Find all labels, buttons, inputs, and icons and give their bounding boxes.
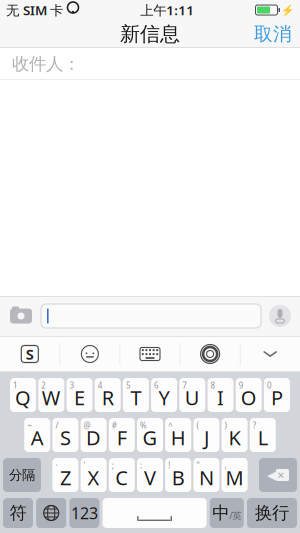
button[interactable]: Hide keyboard [240, 336, 300, 372]
button[interactable]: Settings [180, 336, 240, 372]
staticText: 分隔 [9, 467, 35, 483]
staticText: 符 [9, 502, 26, 524]
button[interactable]: Sogou [0, 336, 60, 372]
staticText: K [229, 424, 241, 451]
button[interactable]: Delete [259, 458, 297, 492]
staticText: ? [253, 420, 256, 431]
button[interactable]: @ [81, 418, 107, 452]
button[interactable]: ) [222, 418, 248, 452]
staticText: 3 [69, 380, 74, 391]
button[interactable]: 6 [151, 378, 177, 412]
staticText: D [86, 424, 101, 451]
staticText: U [185, 384, 200, 411]
staticText: 换行 [255, 502, 289, 524]
staticText: 中 [212, 502, 229, 524]
button[interactable]: : [137, 458, 163, 492]
staticText: 5 [126, 380, 131, 391]
staticText: ! [168, 460, 170, 471]
button[interactable]: ~ [24, 418, 50, 452]
staticText: W [42, 384, 61, 411]
staticText: ⚡ [281, 4, 294, 16]
button[interactable]: ^ [165, 418, 191, 452]
button[interactable]: 3 [66, 378, 92, 412]
staticText: J [204, 424, 209, 451]
staticText: C [115, 464, 128, 491]
button[interactable]: ? [250, 418, 276, 452]
staticText: 8 [210, 380, 215, 391]
button[interactable]: ! [165, 458, 191, 492]
button[interactable]: 4 [95, 378, 121, 412]
staticText: × [277, 467, 284, 483]
staticText: 7 [182, 380, 187, 391]
button[interactable]: Space [103, 498, 207, 528]
button[interactable]: 123 [69, 498, 99, 528]
staticText: 上午1:11 [140, 1, 194, 19]
button[interactable]: 5 [123, 378, 149, 412]
staticText: 收件人： [12, 53, 80, 75]
staticText: M [226, 464, 244, 491]
staticText: 无 SIM 卡 [6, 1, 63, 19]
button[interactable]: 符 [3, 498, 33, 528]
staticText: O [241, 384, 257, 411]
staticText: ◀ [267, 468, 276, 482]
staticText: 新信息 [120, 22, 180, 46]
button[interactable]: 0 [264, 378, 290, 412]
button[interactable]: / [52, 418, 78, 452]
staticText: I [217, 384, 224, 411]
button[interactable]: Switch keyboard [36, 498, 66, 528]
button[interactable]: % [137, 418, 163, 452]
button[interactable]: ; [109, 458, 135, 492]
staticText: 2 [41, 380, 46, 391]
staticText: S [26, 344, 34, 364]
staticText: / [55, 420, 58, 431]
staticText: : [140, 460, 142, 471]
staticText: F [117, 424, 127, 451]
button[interactable]: 取消 [246, 16, 300, 51]
staticText: X [88, 464, 100, 491]
staticText: Y [159, 384, 170, 411]
staticText: 1 [13, 380, 18, 391]
staticText: E [74, 384, 85, 411]
staticText: V [144, 464, 156, 491]
button[interactable]: Emoji [60, 336, 120, 372]
button[interactable]: · [52, 458, 78, 492]
staticText: ( [196, 420, 198, 431]
staticText: H [171, 424, 186, 451]
button[interactable]: ( [193, 418, 219, 452]
staticText: · [55, 460, 57, 471]
staticText: @ [84, 420, 91, 431]
staticText: L [258, 424, 268, 451]
staticText: P [271, 384, 283, 411]
button[interactable]: 分隔 [3, 458, 41, 492]
staticText: 123 [71, 502, 98, 524]
staticText: ; [112, 460, 114, 471]
staticText: S [60, 424, 71, 451]
staticText: ) [225, 420, 227, 431]
button[interactable]: Keyboard layout [120, 336, 180, 372]
button[interactable]: 中 [210, 498, 244, 528]
staticText: # [112, 420, 117, 431]
staticText: , [225, 460, 227, 471]
staticText: Q [15, 384, 31, 411]
button[interactable]: ' [81, 458, 107, 492]
staticText: T [130, 384, 141, 411]
button[interactable]: # [109, 418, 135, 452]
button[interactable]: 2 [38, 378, 64, 412]
staticText: 6 [154, 380, 159, 391]
button[interactable]: 换行 [247, 498, 297, 528]
button[interactable]: 8 [207, 378, 233, 412]
staticText: B [172, 464, 185, 491]
staticText: /英 [229, 509, 241, 522]
button[interactable]: " [193, 458, 219, 492]
button[interactable]: Dictation [268, 304, 292, 328]
button[interactable]: 9 [236, 378, 262, 412]
staticText: % [140, 420, 147, 431]
button[interactable]: , [222, 458, 248, 492]
staticText: G [142, 424, 157, 451]
button[interactable]: 收件人： [0, 48, 300, 80]
button[interactable]: Camera [8, 305, 34, 327]
button[interactable]: 1 [10, 378, 36, 412]
staticText: 取消 [254, 22, 292, 45]
staticText: ^ [168, 420, 173, 431]
button[interactable]: 7 [179, 378, 205, 412]
